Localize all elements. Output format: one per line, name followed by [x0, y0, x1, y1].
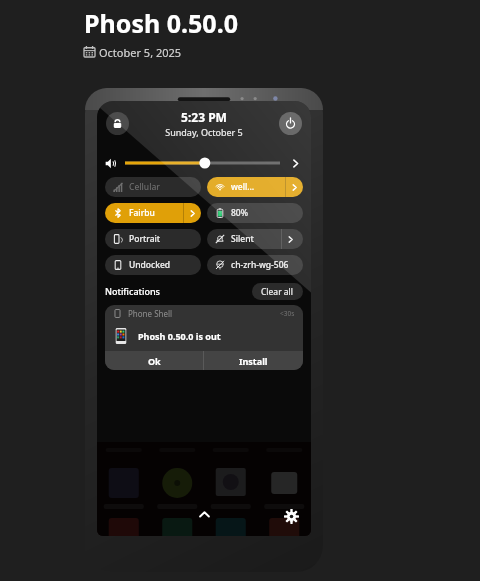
button[interactable]: Clear all — [252, 283, 303, 300]
button[interactable] — [125, 155, 280, 171]
button[interactable]: Power options — [279, 112, 302, 135]
button[interactable]: Phosh 0.50.0 is out — [113, 321, 295, 351]
staticText: Silent — [231, 233, 254, 245]
staticText: ch-zrh-wg-506 — [231, 259, 289, 271]
staticText: Cellular — [129, 181, 160, 193]
staticText: Phosh 0.50.0 — [84, 6, 238, 40]
button[interactable]: More volume settings — [287, 155, 303, 171]
button[interactable]: Undocked — [105, 255, 201, 275]
button[interactable]: Cellular — [105, 177, 201, 197]
staticText: Fairbuds XL — [129, 207, 156, 219]
staticText: <30s — [280, 309, 295, 318]
button[interactable]: Silent — [207, 229, 303, 249]
button[interactable]: Show app drawer — [195, 505, 213, 523]
button[interactable]: Lock screen — [106, 112, 129, 135]
staticText: Clear all — [261, 286, 294, 298]
staticText: Notifications — [105, 285, 160, 297]
button[interactable]: Fairbuds XL — [105, 203, 201, 223]
staticText: well…5Ghz — [231, 181, 258, 193]
staticText: Ok — [148, 355, 161, 367]
staticText: Sunday, October 5 — [165, 126, 243, 138]
staticText: October 5, 2025 — [99, 45, 182, 60]
staticText: Undocked — [129, 259, 171, 271]
button[interactable]: Portrait — [105, 229, 201, 249]
staticText: Install — [239, 355, 268, 367]
button[interactable]: Settings — [281, 506, 301, 526]
button[interactable]: Ok — [105, 351, 203, 370]
staticText: Phosh 0.50.0 is out — [138, 330, 221, 342]
staticText: Phone Shell — [128, 308, 173, 319]
button[interactable]: well…5Ghz — [207, 177, 303, 197]
staticText: 5:23 PM — [181, 109, 227, 125]
staticText: Portrait — [129, 233, 161, 245]
button[interactable]: ch-zrh-wg-506 — [207, 255, 303, 275]
staticText: 80% — [231, 207, 248, 219]
button[interactable]: 80% — [207, 203, 303, 223]
button[interactable]: Install — [204, 351, 303, 370]
